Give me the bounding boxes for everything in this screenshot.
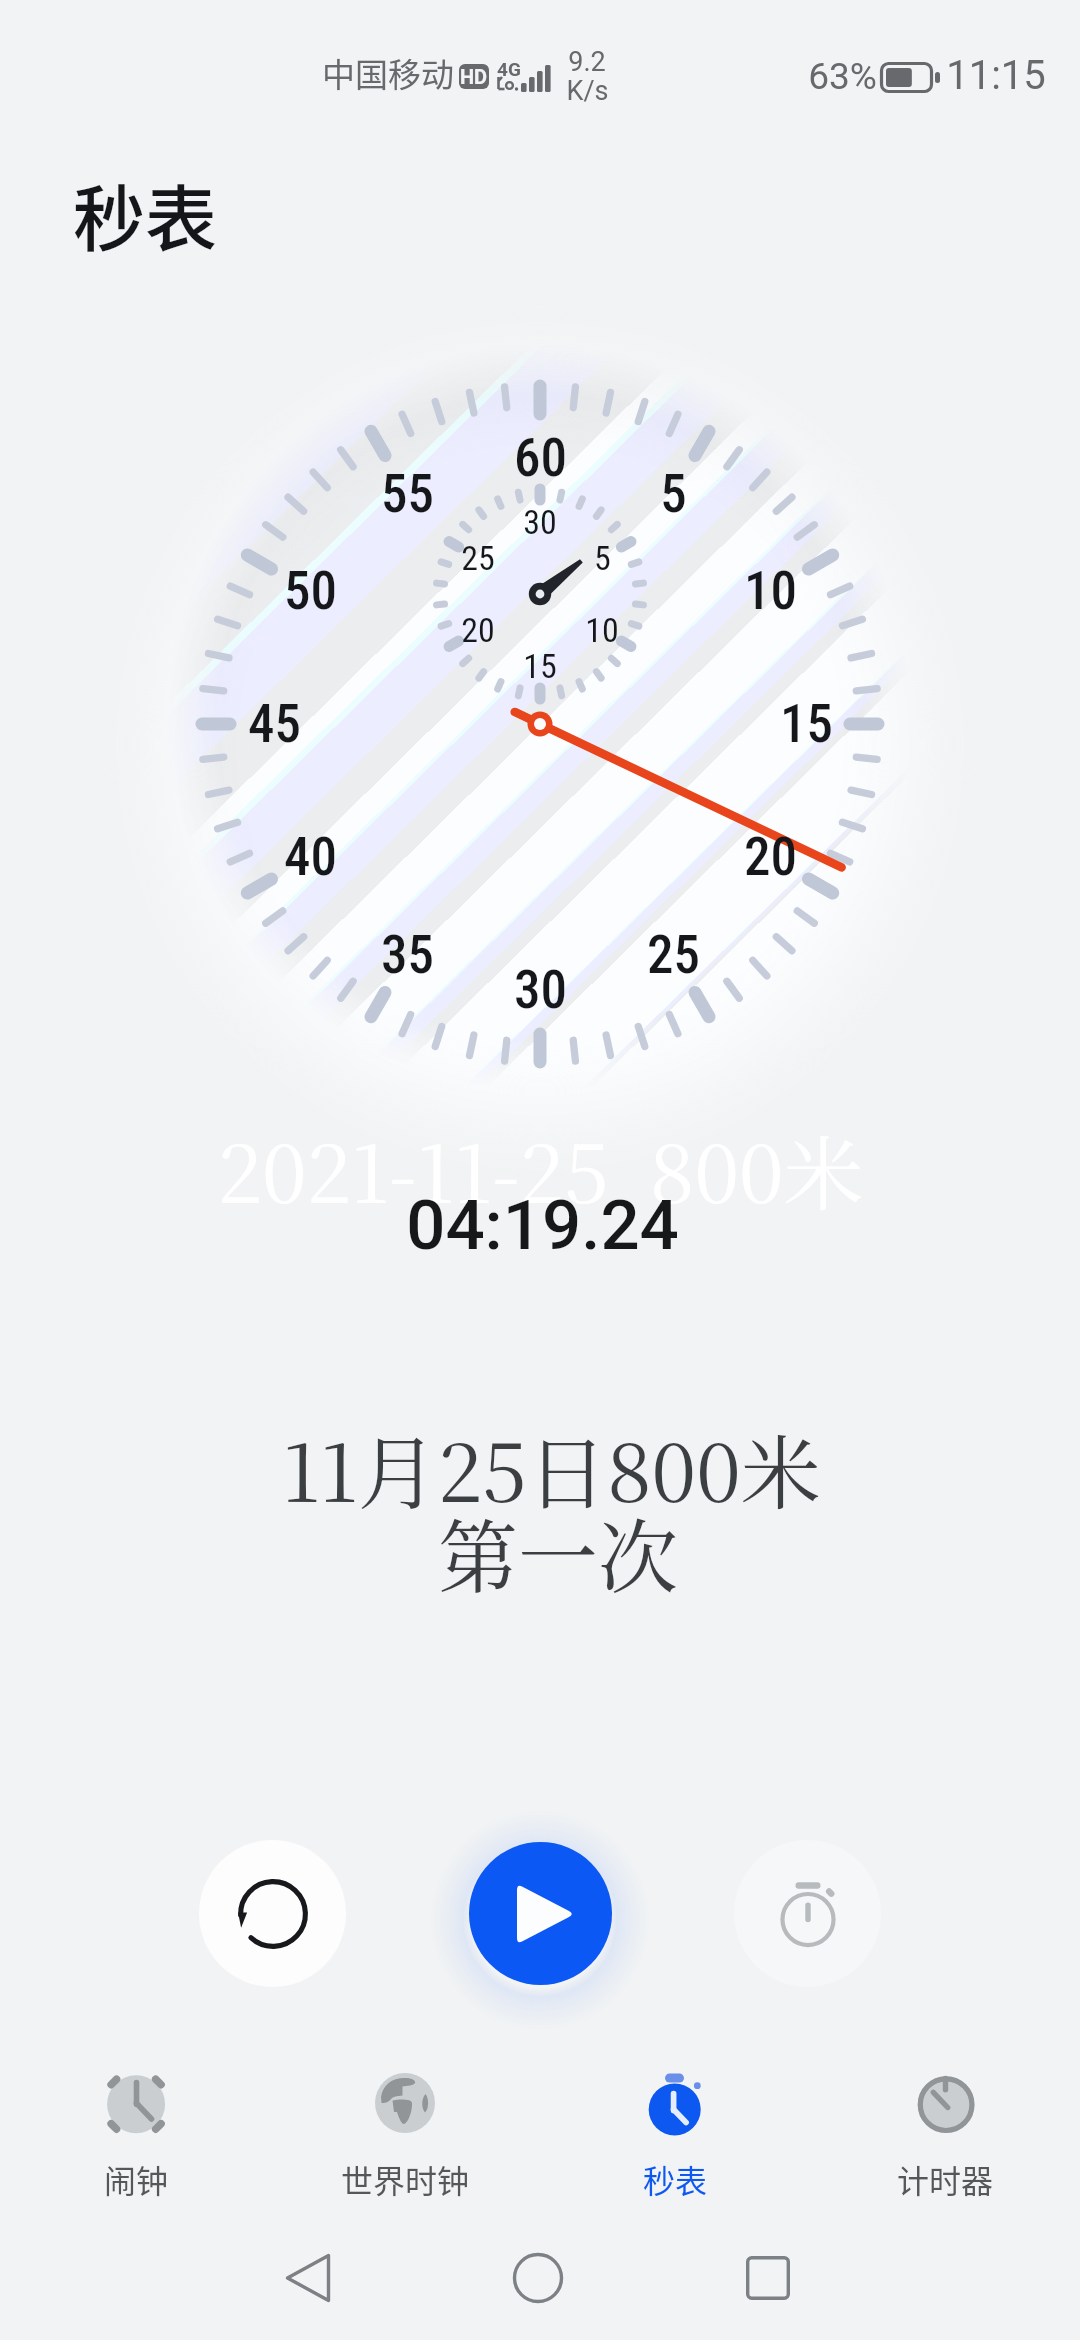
staticText: 15 [523, 650, 557, 686]
button[interactable]: Reset [199, 1840, 346, 1987]
staticText: 15 [780, 698, 833, 754]
button[interactable]: 计时器 [811, 2053, 1079, 2213]
staticText: HD [460, 65, 488, 88]
button[interactable]: 秒表 [541, 2053, 809, 2213]
staticText: 中国移动 [322, 59, 454, 94]
staticText: K/s [566, 78, 609, 106]
button[interactable]: Start [469, 1842, 612, 1985]
staticText: 闹钟 [2, 2156, 270, 2202]
staticText: 4G [497, 58, 521, 80]
staticText: 45 [248, 698, 301, 754]
staticText: 04:19.24 [406, 1192, 679, 1264]
staticText: 25 [647, 929, 700, 985]
staticText: 30 [523, 506, 557, 542]
button[interactable]: 世界时钟 [271, 2053, 539, 2213]
staticText: 55 [381, 468, 434, 524]
staticText: 20 [461, 614, 495, 650]
staticText: 5 [660, 468, 687, 524]
staticText: 63% [808, 58, 877, 97]
staticText: 60 [514, 432, 567, 488]
staticText: 秒表 [541, 2156, 809, 2202]
staticText: 11月25日800米 [282, 1435, 821, 1519]
staticText: 计时器 [811, 2156, 1079, 2202]
staticText: 25 [461, 542, 495, 578]
staticText: 10 [585, 614, 619, 650]
staticText: 50 [284, 565, 337, 621]
button[interactable]: Back [210, 2242, 406, 2314]
staticText: 第一次 [438, 1519, 678, 1603]
staticText: 11:15 [946, 56, 1046, 98]
staticText: 10 [744, 565, 797, 621]
staticText: 40 [284, 831, 337, 887]
staticText: 2021-11-25 800米 [217, 1136, 864, 1220]
staticText: 9.2 [568, 49, 606, 77]
staticText: 5 [594, 542, 611, 578]
staticText: 35 [381, 929, 434, 985]
button[interactable]: Recents [670, 2242, 866, 2314]
button[interactable]: Lap [734, 1840, 881, 1987]
staticText: 世界时钟 [271, 2156, 539, 2202]
staticText: 秒表 [73, 161, 218, 265]
button[interactable]: Home [440, 2242, 636, 2314]
staticText: 30 [514, 964, 567, 1020]
staticText: 20 [744, 831, 797, 887]
button[interactable]: 闹钟 [2, 2053, 270, 2213]
